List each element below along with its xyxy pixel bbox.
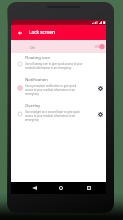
staticText: Use a floating icon to give quick access… [25, 62, 83, 70]
staticText: On [30, 45, 36, 50]
button[interactable]: On [11, 40, 106, 53]
button[interactable]: Navigate up [12, 25, 28, 40]
staticText: Floating icon [25, 55, 51, 61]
button[interactable]: Settings [94, 75, 106, 101]
staticText: Lock screen [29, 29, 55, 35]
button[interactable]: Recent apps [73, 182, 104, 194]
button[interactable]: Back [19, 182, 50, 194]
button[interactable]: Home [45, 182, 76, 194]
staticText: Overlay [25, 103, 41, 109]
staticText: Use a widget on a second layer to give q… [25, 110, 80, 122]
staticText: Use a persistent notification to give qu… [25, 84, 77, 96]
button[interactable]: Settings [94, 101, 106, 127]
button[interactable]: Notification [11, 75, 106, 101]
button[interactable]: Floating icon [11, 53, 106, 75]
staticText: Notification [25, 77, 48, 83]
button[interactable]: Overlay [11, 101, 106, 127]
